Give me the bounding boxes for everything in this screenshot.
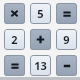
button[interactable]: Equals [4, 55, 25, 76]
button[interactable]: 2 [4, 29, 25, 50]
button[interactable]: 13 [30, 55, 51, 76]
button[interactable]: Multiply [4, 3, 25, 24]
staticText: 9 [63, 32, 70, 47]
button[interactable]: 9 [56, 29, 77, 50]
staticText: 5 [37, 6, 44, 21]
button[interactable]: Plus [30, 29, 51, 50]
button[interactable]: Minus [56, 55, 77, 76]
button[interactable]: Equals [56, 3, 77, 24]
staticText: 13 [34, 58, 47, 73]
staticText: 2 [11, 32, 18, 47]
button[interactable]: 5 [30, 3, 51, 24]
